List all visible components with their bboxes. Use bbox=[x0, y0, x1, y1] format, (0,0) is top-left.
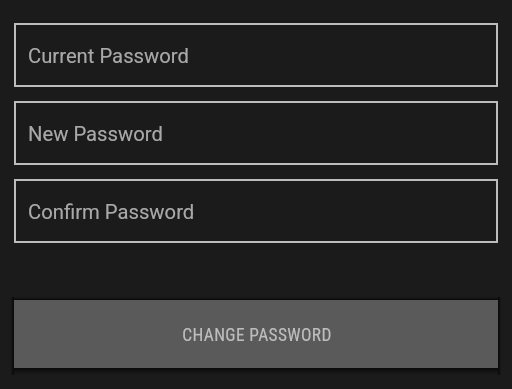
button[interactable]: New Password bbox=[14, 101, 498, 165]
button[interactable]: Current Password bbox=[14, 23, 498, 87]
staticText: Current Password bbox=[28, 44, 189, 68]
button[interactable]: CHANGE PASSWORD bbox=[14, 300, 498, 368]
staticText: Confirm Password bbox=[28, 200, 195, 224]
staticText: New Password bbox=[28, 122, 163, 146]
staticText: CHANGE PASSWORD bbox=[182, 325, 332, 345]
button[interactable]: Confirm Password bbox=[14, 179, 498, 243]
